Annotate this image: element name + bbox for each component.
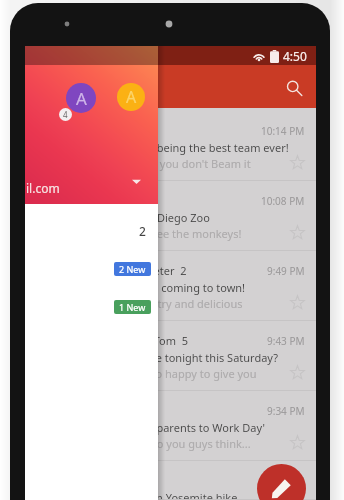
button[interactable]: Tim Brown [25, 461, 316, 500]
staticText: Jason Lee [99, 193, 148, 208]
staticText: Hey what do you guys think... [99, 436, 251, 451]
button[interactable]: A [117, 83, 145, 111]
staticText: Jim, Ben, Peter 2 [99, 263, 187, 278]
button[interactable]: 2 New [25, 261, 158, 277]
staticText: Sam, Ann, Tom 5 [99, 333, 189, 348]
staticText: 10:08 PM [261, 194, 305, 208]
button[interactable]: Search [282, 76, 306, 100]
staticText: A [76, 87, 87, 110]
staticText: 9:34 PM [267, 404, 305, 418]
staticText: 4:50 [283, 48, 307, 64]
button[interactable]: Jason Lee [25, 181, 316, 251]
button[interactable]: Compose [257, 464, 306, 500]
staticText: Thanks for being the best team ever! [99, 140, 289, 155]
staticText: The truck is coming to town! [99, 280, 246, 295]
staticText: A [126, 86, 137, 108]
button[interactable]: Sam, Ann, Tom 5 [25, 321, 316, 391]
staticText: I'd love to see the monkeys! [99, 226, 242, 241]
button[interactable]: Ross Lee [25, 391, 316, 461]
button[interactable]: 1 New [25, 299, 158, 315]
staticText: Photos from Yosemite hike [99, 490, 238, 500]
staticText: Bring your parents to Work Day' [99, 420, 265, 435]
staticText: It's so country and delicious [99, 296, 243, 311]
button[interactable]: A [66, 83, 96, 113]
staticText: 9:49 PM [267, 264, 305, 278]
staticText: 9:43 PM [267, 334, 305, 348]
staticText: 1 New [119, 301, 146, 313]
staticText: Trip to San Diego Zoo [99, 210, 210, 225]
button[interactable]: 2 [25, 223, 158, 239]
staticText: il.com [26, 180, 60, 196]
button[interactable]: Marc, me [25, 111, 316, 181]
staticText: 4 [63, 109, 68, 120]
staticText: 2 [139, 223, 146, 239]
button[interactable]: Jim, Ben, Peter 2 [25, 251, 316, 321]
staticText: Marc, me [99, 123, 148, 138]
staticText: We're are so happy to give you [99, 366, 257, 381]
staticText: 9:18 PM [267, 474, 305, 488]
staticText: 10:14 PM [261, 124, 305, 138]
staticText: 2 New [119, 263, 146, 275]
staticText: Are you free tonight this Saturday? [99, 350, 278, 365]
staticText: Well unless you don't Beam it [99, 156, 251, 171]
